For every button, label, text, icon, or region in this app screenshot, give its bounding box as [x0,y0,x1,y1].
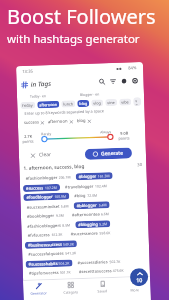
button[interactable]: Scroll to top, 10 results [130,268,148,286]
staticText: Blogger · en [80,91,100,97]
staticText: 558.6K [99,230,111,235]
button[interactable]: blog [77,118,91,124]
button[interactable]: #blogger [76,172,113,180]
staticText: #successmore [70,230,99,236]
staticText: blog [77,118,86,124]
button[interactable]: #fashionbloggers [24,221,73,230]
button[interactable]: #bookblogger [24,212,67,220]
staticText: 2.7K [24,134,32,139]
staticText: Always [100,129,111,134]
staticText: vlog [93,100,101,106]
button[interactable]: #travelblogger [62,182,110,191]
staticText: #successdiaries [77,259,109,265]
staticText: #blogger [79,174,97,179]
staticText: 5.4M [99,202,107,207]
button[interactable]: Generator [23,280,55,300]
staticText: #successhabits [28,261,58,267]
staticText: success [24,119,39,126]
button[interactable]: Language [120,77,128,85]
staticText: 502.7K [109,259,121,264]
staticText: afternoon [39,102,57,107]
button[interactable]: #bblogger [73,201,110,209]
staticText: 612.3K [51,232,63,237]
staticText: 5.4M [61,203,69,209]
staticText: 100.9M [54,194,66,199]
staticText: ve [135,98,139,105]
button[interactable]: Clear [30,150,53,160]
staticText: #fashionbloggers [27,223,61,229]
button[interactable]: friday [20,102,35,109]
staticText: #fvfsuccess [27,232,51,238]
staticText: Category [63,289,79,295]
button[interactable]: blog [77,100,89,107]
staticText: Generator [30,290,48,296]
button[interactable]: ve [133,97,141,106]
staticText: #afternoontea [72,211,100,217]
button[interactable]: Search [98,78,106,85]
button[interactable]: #secrettosuccess [76,267,127,275]
staticText: Enter up to 8 keywords separated by a sp… [24,108,105,116]
staticText: points [118,135,131,141]
staticText: with hashtags generator [7,31,140,47]
staticText: 13:35 [22,69,33,75]
staticText: points [22,139,35,144]
staticText: blog [79,101,87,106]
staticText: 30 [137,162,142,168]
staticText: #foodblogger [26,194,53,200]
staticText: 107.2M [45,185,57,190]
button[interactable]: #fashionblogger [23,173,74,182]
button[interactable]: afternoon [37,101,59,108]
button[interactable]: More [118,277,151,300]
button[interactable]: lunch [61,100,75,108]
staticText: 206.1M [59,174,71,180]
button[interactable]: Saved [86,278,119,300]
staticText: 501.1K [60,269,71,275]
button[interactable]: vine [105,99,117,106]
staticText: More [130,287,140,292]
button[interactable]: #afternoontea [69,210,112,218]
staticText: #fashionblogger [26,175,58,181]
button[interactable]: Filter [109,78,117,85]
staticText: 475.6K [113,268,124,273]
button[interactable]: Generate [85,147,132,160]
button[interactable]: Instagram [131,77,139,84]
staticText: 72.0M [87,192,97,198]
staticText: 102.4M [95,183,107,189]
button[interactable]: #successfulquotes [25,249,79,258]
button[interactable]: success [24,119,44,126]
button[interactable]: afternoon [48,118,73,125]
button[interactable]: #successmindset [24,202,72,211]
staticText: #secrettosuccess [79,268,112,274]
button[interactable]: #successdiaries [74,258,124,266]
button[interactable]: #fvfsuccess [24,231,66,239]
staticText: #successfulquotes [28,251,64,257]
staticText: 8.5M [62,222,70,228]
button[interactable]: #tipsforsuccess [26,268,74,277]
staticText: 10 [136,276,143,283]
button[interactable]: #blogging [75,220,110,228]
button[interactable]: vibe [119,98,131,106]
button[interactable]: #businesssuccess [25,240,77,249]
button[interactable]: #successhabits [25,259,73,268]
staticText: #businesssuccess [28,242,62,248]
staticText: #bblogger [77,202,98,208]
staticText: 84% [128,65,137,71]
staticText: 6.6M [101,211,109,216]
button[interactable]: #blog [71,191,100,199]
staticText: Generate [101,150,124,157]
button[interactable]: Category [54,279,87,300]
staticText: 5.2M [99,221,107,226]
staticText: in Tags [30,79,52,89]
button[interactable]: vlog [91,99,103,107]
button[interactable]: #success [23,184,60,192]
button[interactable]: #foodblogger [23,192,69,201]
button[interactable]: #successmore [67,229,114,237]
staticText: Rarely [41,131,51,136]
staticText: 1. afternoon, success, blog [23,163,85,172]
staticText: 504.2K [58,260,70,266]
staticText: 549.3K [63,241,74,247]
staticText: lunch [63,101,73,107]
staticText: Clear [39,151,52,158]
staticText: Today · en [30,93,47,99]
staticText: #bookblogger [27,213,55,219]
